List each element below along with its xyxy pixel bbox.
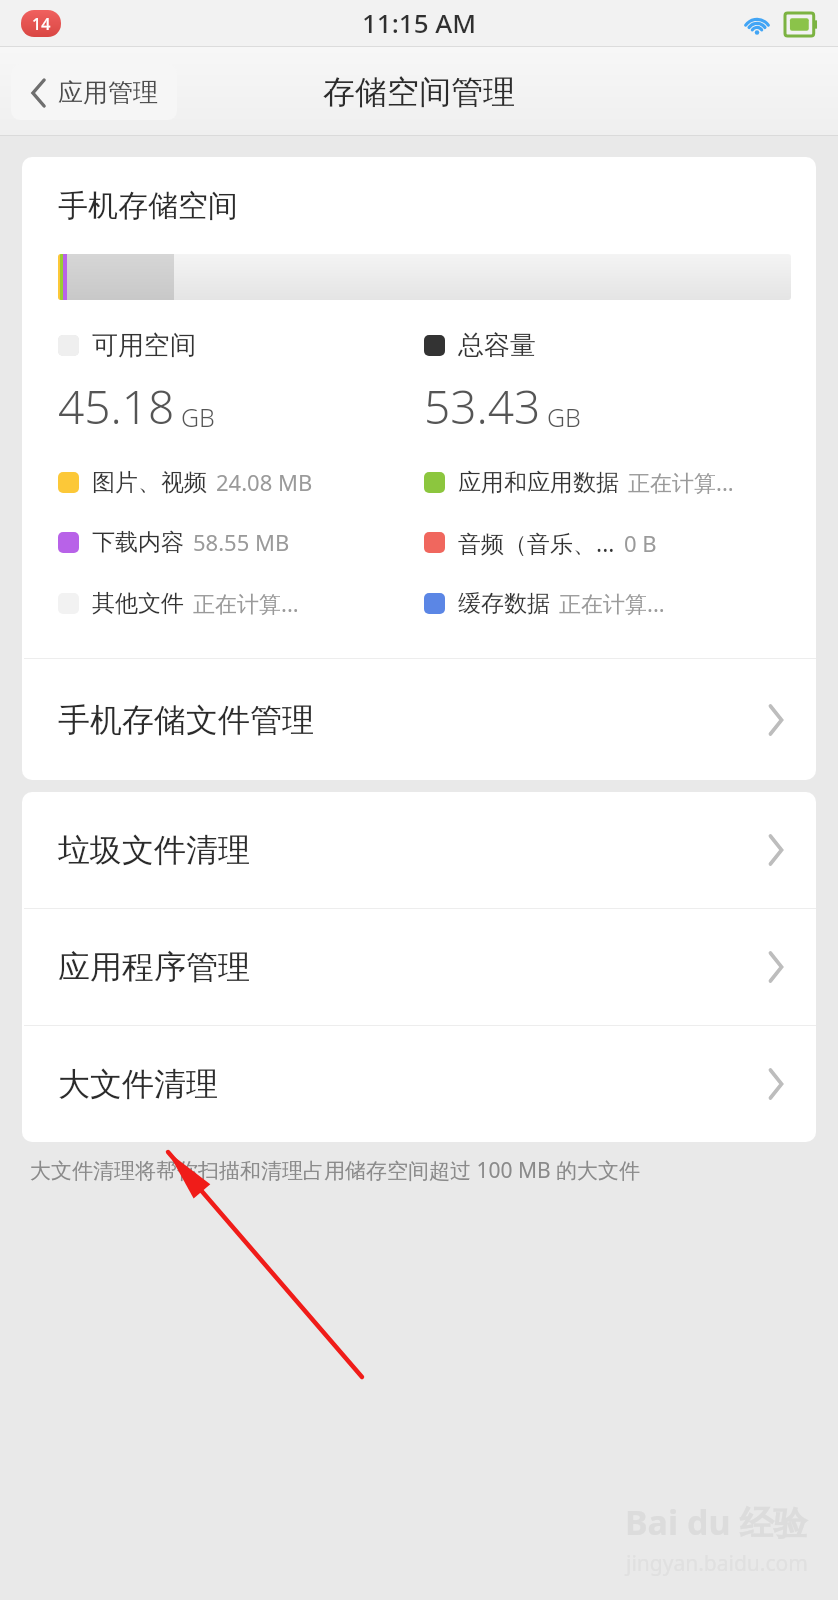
staticText: 音频（音乐、... bbox=[458, 527, 615, 558]
staticText: 图片、视频 bbox=[92, 468, 207, 497]
button[interactable]: 应用程序管理 bbox=[22, 909, 816, 1025]
staticText: 应用程序管理 bbox=[58, 947, 250, 987]
staticText: 总容量 bbox=[458, 329, 536, 362]
staticText: 其他文件 bbox=[92, 589, 184, 618]
button[interactable]: 手机存储文件管理 bbox=[22, 659, 816, 780]
staticText: 手机存储空间 bbox=[58, 187, 238, 225]
staticText: 大文件清理将帮你扫描和清理占用储存空间超过 100 MB 的大文件 bbox=[30, 1156, 808, 1185]
staticText: 53.43 bbox=[424, 375, 541, 438]
staticText: 正在计算... bbox=[193, 588, 299, 618]
staticText: 0 B bbox=[624, 528, 657, 558]
button[interactable]: 垃圾文件清理 bbox=[22, 792, 816, 908]
staticText: 应用和应用数据 bbox=[458, 468, 619, 497]
staticText: GB bbox=[181, 400, 215, 434]
staticText: 大文件清理 bbox=[58, 1064, 218, 1104]
staticText: 垃圾文件清理 bbox=[58, 830, 250, 870]
staticText: 正在计算... bbox=[628, 467, 734, 497]
staticText: 应用管理 bbox=[58, 77, 158, 108]
staticText: 可用空间 bbox=[92, 329, 196, 362]
staticText: 24.08 MB bbox=[216, 467, 313, 497]
staticText: GB bbox=[547, 400, 581, 434]
button[interactable]: 返回 应用管理 bbox=[11, 64, 177, 120]
staticText: 45.18 bbox=[58, 375, 175, 438]
staticText: 存储空间管理 bbox=[323, 72, 515, 112]
staticText: 14 bbox=[32, 13, 51, 35]
staticText: 58.55 MB bbox=[193, 527, 290, 557]
staticText: 缓存数据 bbox=[458, 589, 550, 618]
staticText: jingyan.baidu.com bbox=[626, 1549, 808, 1578]
staticText: 正在计算... bbox=[559, 588, 665, 618]
staticText: 下载内容 bbox=[92, 528, 184, 557]
staticText: Bai du 经验 bbox=[625, 1499, 808, 1545]
button[interactable]: 大文件清理 bbox=[22, 1026, 816, 1142]
staticText: 11:15 AM bbox=[362, 5, 477, 40]
staticText: 手机存储文件管理 bbox=[58, 700, 314, 740]
